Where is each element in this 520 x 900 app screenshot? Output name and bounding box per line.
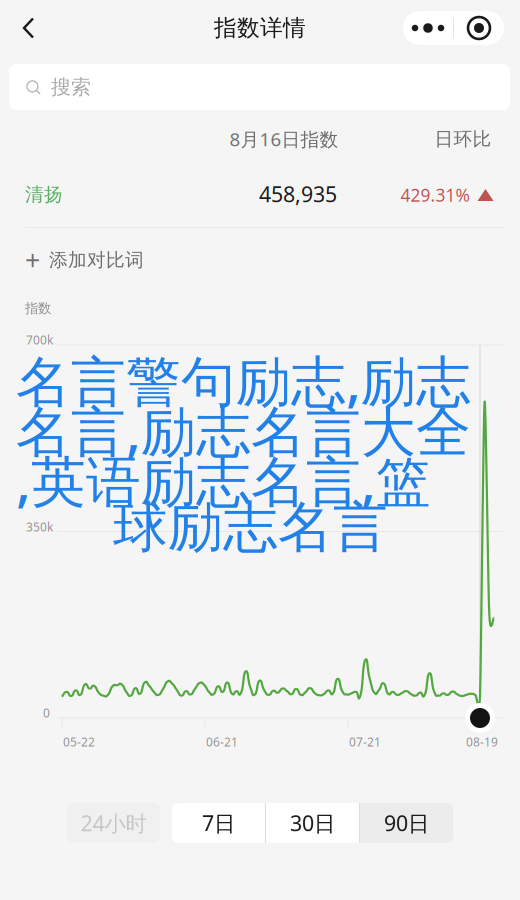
staticText: 指数详情: [214, 14, 306, 42]
staticText: 0: [43, 705, 50, 721]
button[interactable]: More: [403, 11, 453, 45]
staticText: 07-21: [349, 734, 381, 750]
button[interactable]: 30日: [266, 803, 359, 843]
staticText: 名言,励志名言大全: [16, 394, 471, 467]
staticText: 458,935: [259, 180, 337, 208]
staticText: 搜索: [51, 75, 91, 99]
staticText: 06-21: [206, 734, 238, 750]
staticText: 24小时: [80, 809, 146, 837]
staticText: 球励志名言: [113, 494, 388, 561]
staticText: ,英语励志名言,篮: [16, 444, 431, 517]
staticText: 添加对比词: [49, 248, 144, 271]
staticText: 30日: [290, 809, 335, 837]
staticText: 08-19: [466, 734, 498, 750]
button[interactable]: Close: [454, 11, 504, 45]
staticText: 8月16日指数: [229, 127, 338, 151]
button[interactable]: 24小时: [67, 803, 160, 843]
staticText: 429.31%: [400, 183, 469, 206]
staticText: 05-22: [63, 734, 95, 750]
button[interactable]: Back: [0, 0, 52, 56]
button[interactable]: 90日: [360, 803, 453, 843]
staticText: 名言警句励志,励志: [16, 344, 471, 417]
staticText: 700k: [26, 332, 53, 348]
button[interactable]: +: [0, 236, 520, 284]
button[interactable]: 7日: [172, 803, 265, 843]
staticText: 90日: [384, 809, 429, 837]
staticText: 7日: [202, 809, 235, 837]
button[interactable]: 搜索: [9, 64, 510, 110]
staticText: 350k: [26, 519, 53, 535]
staticText: 指数: [25, 300, 51, 316]
staticText: 清扬: [25, 183, 63, 206]
staticText: 日环比: [434, 127, 491, 150]
staticText: +: [25, 242, 40, 278]
